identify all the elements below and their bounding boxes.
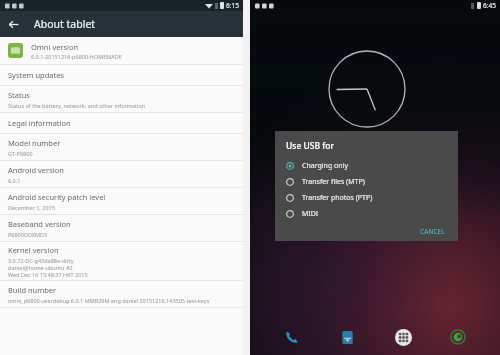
staticText: Status [8, 90, 30, 100]
staticText: 6:45 [483, 1, 496, 10]
button[interactable]: Transfer photos (PTP) [286, 191, 450, 204]
staticText: 6.0.1 [8, 177, 21, 184]
staticText: Build number [8, 285, 57, 295]
staticText: Model number [8, 138, 61, 148]
staticText: System updates [8, 70, 65, 80]
button[interactable]: Android version [0, 161, 243, 187]
staticText: Omni version [31, 42, 79, 52]
button[interactable]: Browser [445, 324, 471, 350]
staticText: Charging only [302, 161, 348, 171]
staticText: Transfer files (MTP) [302, 177, 365, 187]
staticText: P6800DDXMD3 [8, 231, 48, 238]
staticText: CANCEL [420, 227, 445, 236]
staticText: Status of the battery, network, and othe… [8, 102, 146, 109]
button[interactable]: Phone [279, 324, 305, 350]
staticText: omni_p6800-userdebug 6.0.1 MMB29M eng da… [8, 297, 210, 304]
staticText: 3.0.72-DC-g43da88e-dirty [8, 257, 74, 264]
button[interactable]: Charging only [286, 159, 450, 172]
staticText: 6.0.1-20151216-p6800-HOMEMADE [31, 53, 122, 60]
button[interactable]: Status [0, 86, 243, 112]
button[interactable]: Baseband version [0, 215, 243, 241]
staticText: December 1, 2015 [8, 204, 55, 211]
button[interactable]: Apps [390, 324, 416, 350]
button[interactable]: CANCEL [415, 224, 450, 239]
staticText: 6:15 [226, 1, 239, 10]
staticText: MIDI [302, 209, 319, 219]
staticText: Wed Dec 16 15:48:37 HKT 2015 [8, 271, 88, 278]
button[interactable]: Messaging [334, 324, 360, 350]
staticText: GT-P6800 [8, 150, 33, 157]
button[interactable]: System updates [0, 65, 243, 85]
button[interactable]: Omni version [0, 37, 243, 64]
staticText: Android security patch level [8, 192, 106, 202]
button[interactable]: Android security patch level [0, 188, 243, 214]
staticText: Use USB for [286, 140, 335, 152]
staticText: Kernel version [8, 245, 59, 255]
button[interactable]: Transfer files (MTP) [286, 175, 450, 188]
staticText: Baseband version [8, 219, 71, 229]
staticText: daniel@home-ubuntu #2 [8, 264, 73, 271]
staticText: Legal information [8, 118, 71, 128]
button[interactable]: Kernel version [0, 242, 243, 280]
button[interactable]: MIDI [286, 207, 450, 220]
button[interactable]: Legal information [0, 113, 243, 133]
button[interactable]: Model number [0, 134, 243, 160]
staticText: Transfer photos (PTP) [302, 193, 373, 203]
button[interactable]: Back [0, 11, 26, 37]
staticText: Android version [8, 165, 64, 175]
staticText: About tablet [34, 17, 96, 31]
button[interactable]: Build number [0, 281, 243, 307]
